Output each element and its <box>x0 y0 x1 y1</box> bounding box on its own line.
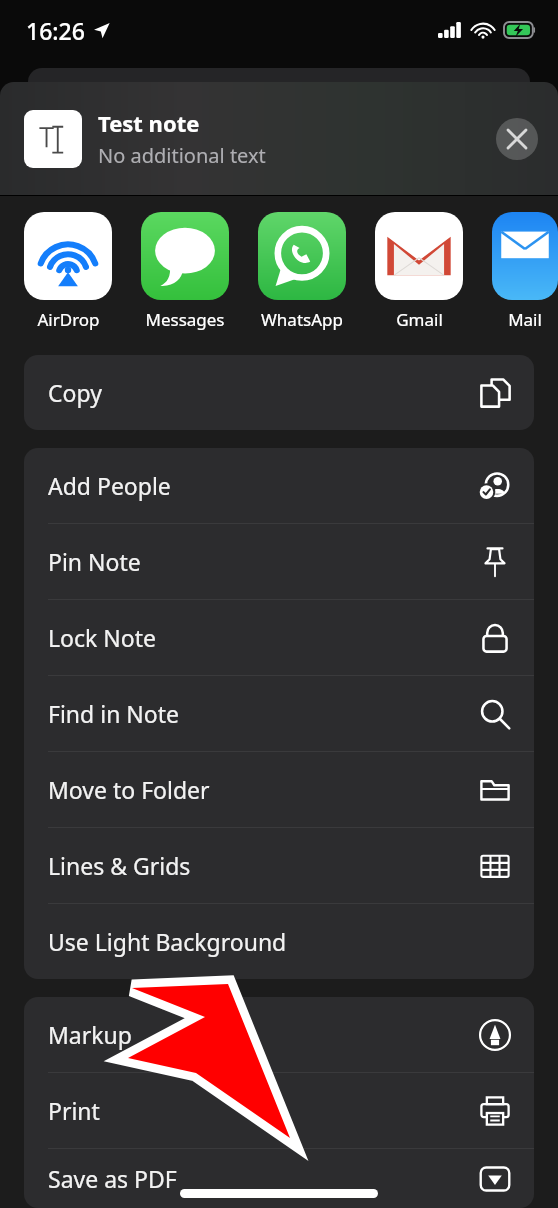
button[interactable]: Markup <box>24 997 534 1072</box>
button[interactable]: Pin Note <box>24 524 534 599</box>
button[interactable]: Gmail <box>375 212 463 331</box>
staticText: AirDrop <box>37 308 100 331</box>
staticText: Move to Folder <box>48 774 210 805</box>
staticText: Use Light Background <box>48 926 287 957</box>
staticText: Save as PDF <box>48 1163 177 1194</box>
button[interactable]: Find in Note <box>24 676 534 751</box>
staticText: WhatsApp <box>261 308 343 331</box>
staticText: Markup <box>48 1019 132 1050</box>
staticText: Print <box>48 1095 100 1126</box>
button[interactable]: Mail <box>492 212 558 331</box>
staticText: No additional text <box>98 142 266 169</box>
button[interactable]: Add People <box>24 448 534 523</box>
button[interactable]: Copy <box>24 355 534 430</box>
staticText: Copy <box>48 377 102 408</box>
staticText: Add People <box>48 470 171 501</box>
staticText: Test note <box>98 108 200 138</box>
button[interactable]: Lock Note <box>24 600 534 675</box>
staticText: Mail <box>508 308 542 331</box>
button[interactable]: Print <box>24 1073 534 1148</box>
button[interactable]: Messages <box>141 212 229 331</box>
staticText: Messages <box>145 308 225 331</box>
staticText: Gmail <box>396 308 443 331</box>
button[interactable]: Lines & Grids <box>24 828 534 903</box>
staticText: Pin Note <box>48 546 141 577</box>
button[interactable]: AirDrop <box>24 212 112 331</box>
button[interactable]: Close <box>496 118 538 160</box>
button[interactable]: Save as PDF <box>24 1149 534 1208</box>
staticText: 16:26 <box>26 15 85 46</box>
staticText: Lock Note <box>48 622 156 653</box>
button[interactable]: Use Light Background <box>24 904 534 979</box>
staticText: Find in Note <box>48 698 180 729</box>
button[interactable]: Move to Folder <box>24 752 534 827</box>
staticText: Lines & Grids <box>48 850 191 881</box>
button[interactable]: WhatsApp <box>258 212 346 331</box>
